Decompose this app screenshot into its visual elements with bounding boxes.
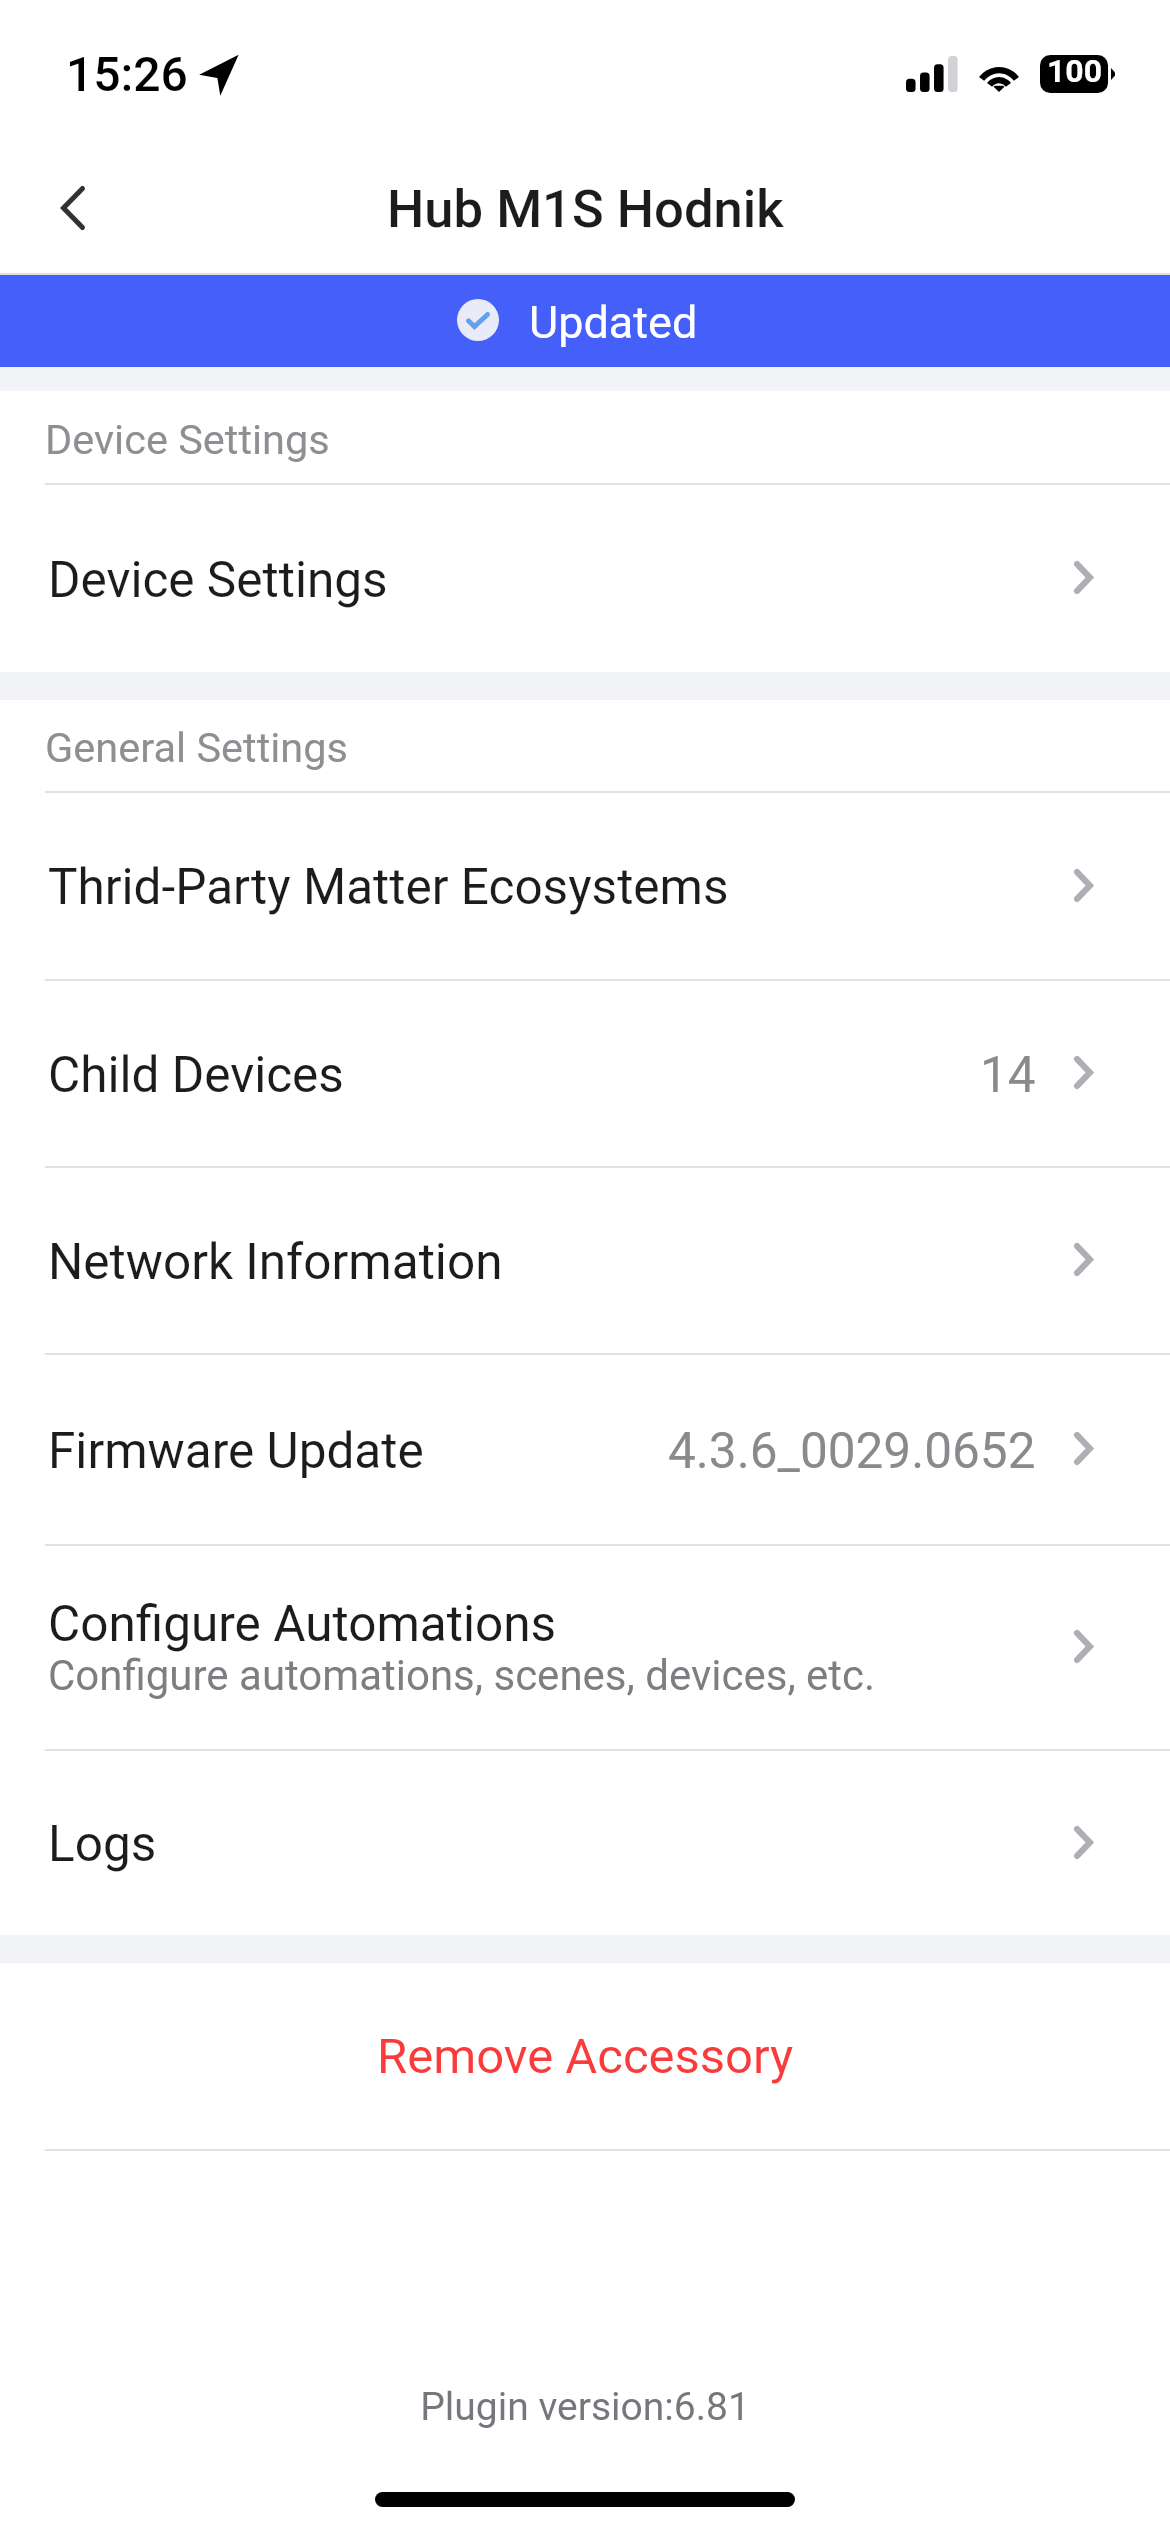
staticText: Firmware Update — [48, 1422, 424, 1480]
staticText: Device Settings — [45, 415, 330, 464]
button[interactable]: Configure Automations — [0, 1544, 1170, 1749]
staticText: Plugin version:6.81 — [0, 2384, 1170, 2430]
staticText: Configure automations, scenes, devices, … — [48, 1651, 876, 1700]
staticText: 14 — [980, 1046, 1036, 1104]
staticText: Configure Automations — [48, 1595, 557, 1653]
staticText: Remove Accessory — [377, 2028, 794, 2085]
button[interactable]: Thrid-Party Matter Ecosystems — [0, 791, 1170, 979]
button[interactable]: Remove Accessory — [0, 1963, 1170, 2149]
button[interactable]: Updated — [0, 273, 1170, 367]
button[interactable]: Logs — [0, 1749, 1170, 1935]
staticText: Logs — [48, 1815, 157, 1873]
button[interactable]: Firmware Update — [0, 1353, 1170, 1544]
staticText: Updated — [529, 296, 698, 349]
staticText: 100 — [1047, 52, 1103, 90]
button[interactable]: Network Information — [0, 1166, 1170, 1353]
staticText: Thrid-Party Matter Ecosystems — [48, 858, 729, 916]
button[interactable]: Back — [22, 146, 124, 269]
button[interactable]: Device Settings — [0, 483, 1170, 672]
staticText: Hub M1S Hodnik — [387, 178, 784, 240]
staticText: Device Settings — [48, 551, 388, 609]
staticText: 15:26 — [66, 46, 188, 102]
button[interactable]: Child Devices — [0, 979, 1170, 1166]
staticText: Network Information — [48, 1233, 503, 1291]
staticText: General Settings — [45, 723, 348, 772]
staticText: Child Devices — [48, 1046, 344, 1104]
staticText: 4.3.6_0029.0652 — [668, 1422, 1036, 1480]
